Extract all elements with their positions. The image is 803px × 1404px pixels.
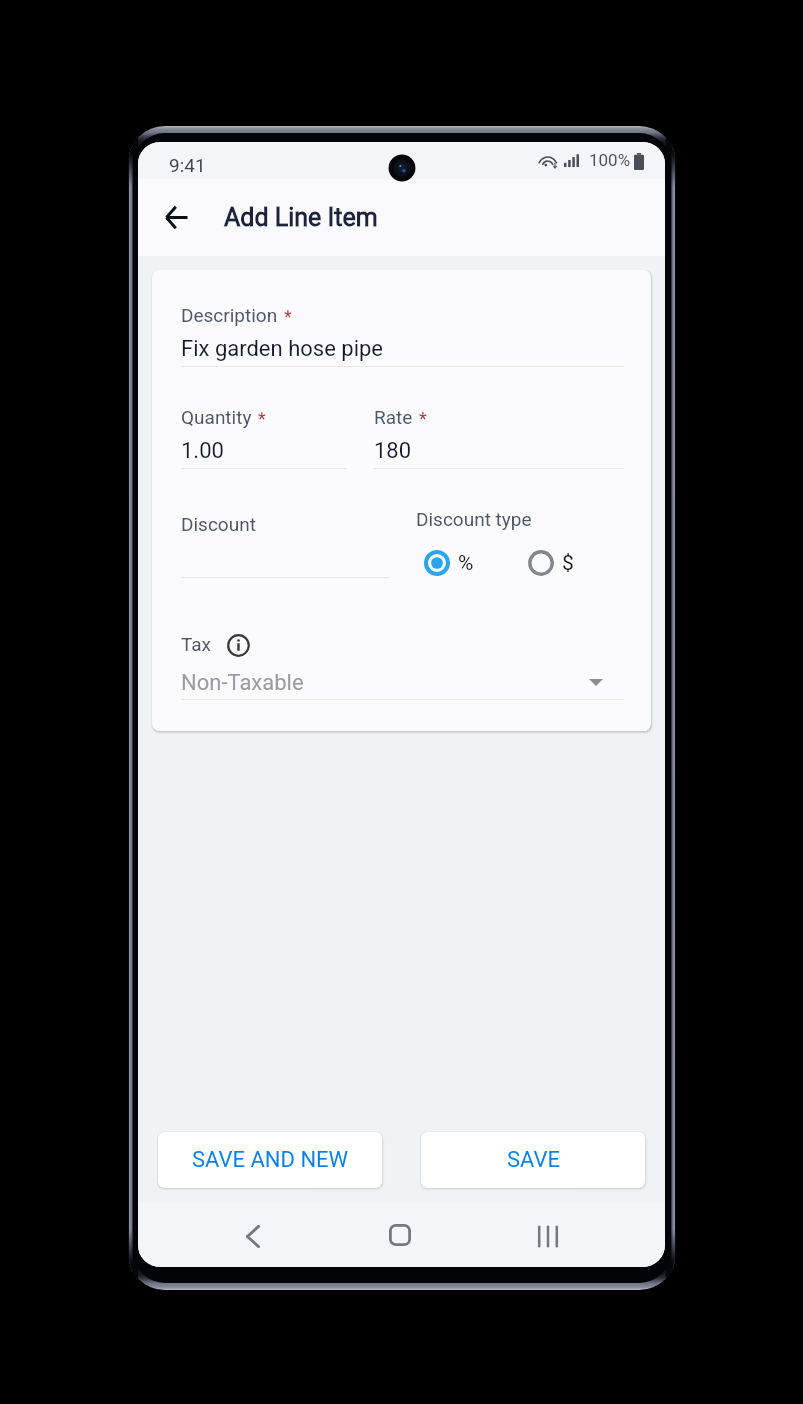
- button[interactable]: SAVE: [421, 1132, 645, 1188]
- staticText: *: [284, 306, 292, 327]
- button[interactable]: Tax information: [226, 633, 250, 657]
- staticText: $: [562, 551, 574, 576]
- staticText: Discount type: [416, 508, 532, 530]
- staticText: Rate: [374, 406, 413, 428]
- staticText: *: [419, 408, 427, 429]
- staticText: Add Line Item: [224, 203, 378, 232]
- button[interactable]: %: [424, 550, 474, 576]
- staticText: Quantity: [181, 406, 252, 428]
- staticText: 100%: [589, 150, 631, 170]
- staticText: SAVE AND NEW: [192, 1147, 349, 1173]
- staticText: Non-Taxable: [181, 670, 304, 696]
- button[interactable]: Back: [225, 1208, 281, 1264]
- staticText: Description: [181, 304, 278, 326]
- button[interactable]: $: [528, 550, 574, 576]
- button[interactable]: Non-Taxable: [181, 668, 624, 698]
- staticText: 9:41: [169, 154, 206, 176]
- staticText: 180: [374, 438, 412, 464]
- staticText: 1.00: [181, 438, 224, 464]
- staticText: SAVE: [507, 1147, 560, 1173]
- staticText: *: [258, 408, 266, 429]
- staticText: Fix garden hose pipe: [181, 336, 383, 362]
- staticText: Discount: [181, 513, 256, 535]
- button[interactable]: Recent apps: [520, 1208, 576, 1264]
- button[interactable]: SAVE AND NEW: [158, 1132, 382, 1188]
- button[interactable]: Home: [372, 1207, 428, 1263]
- staticText: %: [458, 551, 474, 576]
- button[interactable]: Back: [154, 195, 199, 240]
- staticText: Tax: [181, 633, 212, 655]
